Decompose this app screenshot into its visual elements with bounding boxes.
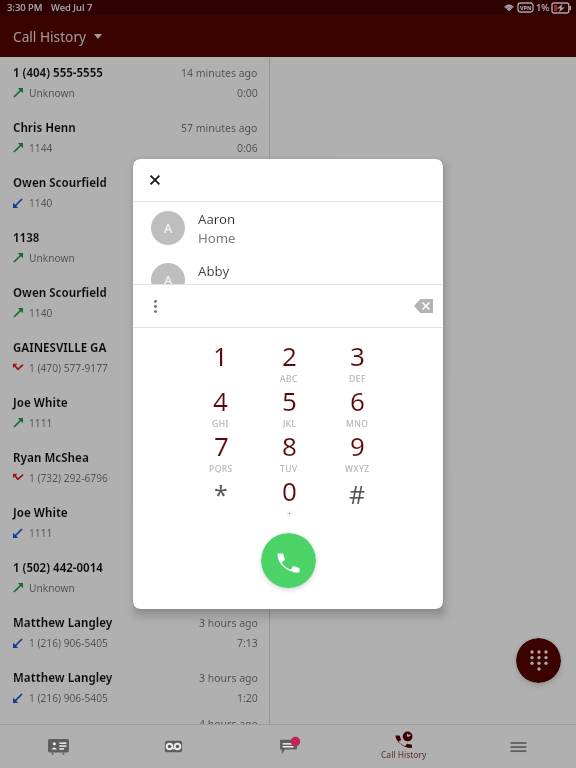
staticText: Abby [198,262,230,280]
button[interactable]: 2 [255,338,323,383]
button[interactable]: 7 [186,428,255,473]
staticText: Home [198,229,236,247]
staticText: 1% [536,1,550,14]
button[interactable]: Contacts [0,725,116,768]
button[interactable]: Matthew Langley [0,662,268,717]
button[interactable]: 6 [323,383,391,428]
staticText: 1 (732) 292-6796 [29,471,108,485]
button[interactable]: GAINESVILLE GA [0,332,268,387]
button[interactable]: Joe White [0,387,268,442]
button[interactable]: Close [135,159,175,201]
staticText: 9 [350,428,365,463]
button[interactable]: Matthew Langley [0,607,268,662]
staticText: 1144 [29,141,53,155]
button[interactable]: 1 [186,338,255,383]
staticText: 3 [350,338,365,373]
staticText: 1140 [29,196,53,210]
button[interactable]: Messages [231,725,346,768]
button[interactable]: Backspace [403,285,443,327]
staticText: ABC [280,373,298,383]
staticText: Joe White [13,395,68,411]
staticText: 1138 [13,230,40,246]
staticText: 1:20 [237,691,258,705]
button[interactable]: 8 [255,428,323,473]
staticText: 0:00 [237,86,258,100]
button[interactable]: Call History [8,15,107,57]
staticText: 0 [282,473,297,508]
staticText: A [164,271,173,284]
staticText: * [214,477,228,511]
staticText: 1 (216) 906-5405 [29,636,108,650]
staticText: Call History [13,27,87,46]
button[interactable]: Owen Scourfield [0,167,268,222]
staticText: Unknown [29,251,75,265]
staticText: Owen Scourfield [13,175,107,191]
staticText: WXYZ [345,463,370,473]
staticText: A [164,219,173,237]
staticText: Ryan McShea [13,450,89,466]
button[interactable]: More options [133,285,178,327]
staticText: 1 (502) 442-0014 [13,560,103,576]
staticText: 7:13 [237,636,258,650]
staticText: 2 [282,338,297,373]
button[interactable]: Owen Scourfield [0,277,268,332]
staticText: + [287,508,293,518]
staticText: Call History [381,749,427,761]
staticText: 1 (216) 906-5405 [29,691,108,705]
button[interactable]: More [461,725,576,768]
staticText: 1 [213,338,228,373]
staticText: 3 hours ago [199,671,258,685]
staticText: Owen Scourfield [13,285,107,301]
button[interactable]: 4 hours ago [0,708,268,724]
button[interactable]: Call [261,533,316,588]
button[interactable]: Chris Henn [0,112,268,167]
staticText: DEF [349,373,366,383]
staticText: 8 [282,428,297,463]
button[interactable]: 4 [186,383,255,428]
button[interactable]: 1138 [0,222,268,277]
button[interactable]: A [133,254,443,284]
staticText: Joe White [13,505,68,521]
staticText: GHI [212,418,229,428]
staticText: Unknown [29,581,75,595]
button[interactable]: 0 [255,473,323,518]
button[interactable]: 1 (502) 442-0014 [0,552,268,607]
staticText: 1140 [29,306,53,320]
staticText: 7 [214,428,229,463]
button[interactable]: 1 (404) 555-5555 [0,57,268,112]
button[interactable]: Open dialpad [516,638,561,683]
button[interactable]: Ryan McShea [0,442,268,497]
button[interactable]: Voicemail [116,725,231,768]
staticText: MNO [346,418,369,428]
button[interactable]: Call History [346,725,461,768]
button[interactable]: * [186,473,255,518]
staticText: Chris Henn [13,120,76,136]
staticText: 1 (470) 577-9177 [29,361,108,375]
staticText: 1 (404) 555-5555 [13,65,103,81]
staticText: Matthew Langley [13,670,113,686]
staticText: 3:30 PM [7,1,43,14]
staticText: 14 minutes ago [181,66,258,80]
staticText: VPN [520,4,532,11]
staticText: # [349,477,366,511]
button[interactable]: 3 [323,338,391,383]
staticText: Matthew Langley [13,615,113,631]
button[interactable]: A [133,202,443,254]
button[interactable]: Joe White [0,497,268,552]
staticText: JKL [283,418,297,428]
staticText: Unknown [29,86,75,100]
staticText: 4 hours ago [199,717,258,724]
staticText: 6 [350,383,365,418]
staticText: 4 [213,383,228,418]
button[interactable]: # [323,473,391,518]
button[interactable]: 5 [255,383,323,428]
staticText: 3 hours ago [199,616,258,630]
staticText: 57 minutes ago [181,121,258,135]
staticText: 0:06 [237,141,258,155]
staticText: GAINESVILLE GA [13,340,107,356]
button[interactable]: 9 [323,428,391,473]
staticText: 5 [282,383,297,418]
staticText: 1111 [29,526,53,540]
staticText: TUV [280,463,298,473]
